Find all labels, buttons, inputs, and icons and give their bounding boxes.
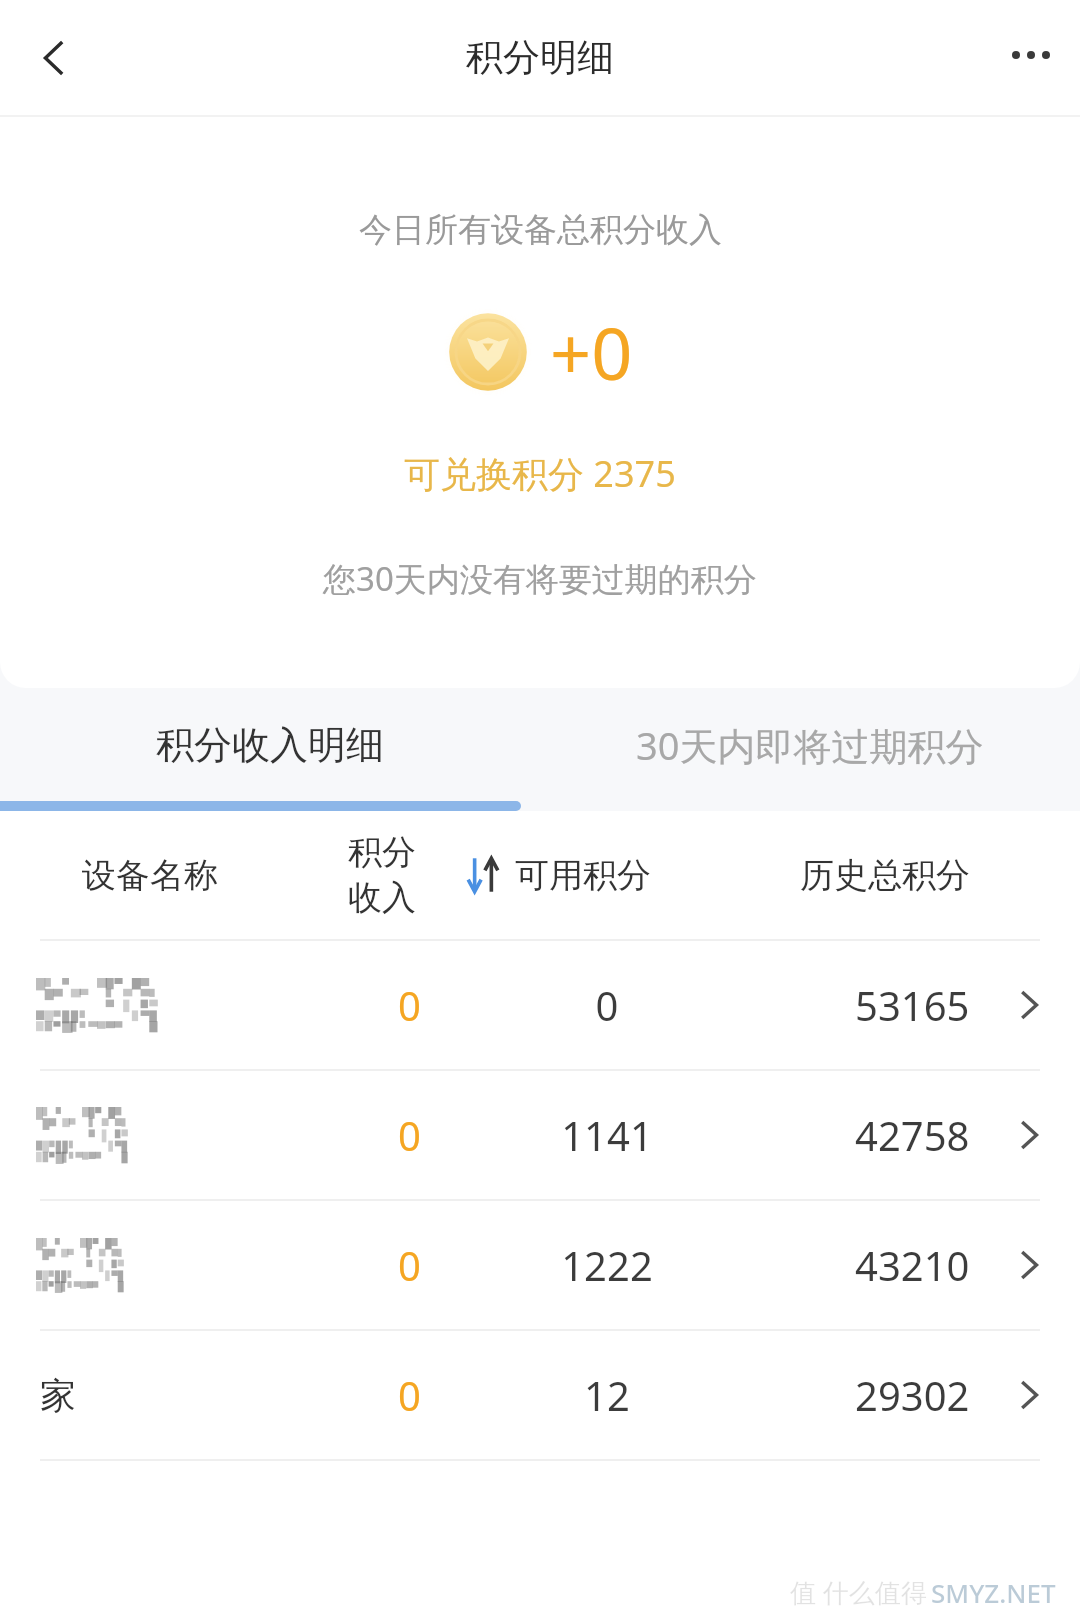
button[interactable]: 积分收入明细 [0, 688, 540, 801]
button[interactable]: 可兑换积分 2375 [404, 449, 676, 498]
button[interactable]: 0 [0, 941, 1080, 1069]
staticText: 29302 [855, 1368, 970, 1422]
staticText: 0 [398, 978, 421, 1032]
staticText: 43210 [855, 1238, 970, 1292]
button[interactable]: 30天内即将过期积分 [540, 688, 1080, 801]
staticText: SMYZ.NET [931, 1575, 1056, 1610]
staticText: 家 [40, 1373, 76, 1418]
button[interactable]: 返回 [20, 23, 90, 93]
staticText: 53165 [855, 978, 970, 1032]
staticText: 可用积分 [515, 854, 651, 897]
staticText: 0 [398, 1238, 421, 1292]
button[interactable]: 家 [0, 1331, 1080, 1459]
staticText: 今日所有设备总积分收入 [359, 209, 722, 251]
staticText: 30天内即将过期积分 [636, 719, 984, 771]
staticText: 您30天内没有将要过期的积分 [323, 556, 757, 601]
staticText: 积分明细 [466, 34, 614, 81]
staticText: 值 什么值得 [790, 1574, 927, 1610]
staticText: 42758 [855, 1108, 970, 1162]
staticText: 0 [507, 978, 707, 1032]
staticText: 1222 [507, 1238, 707, 1292]
button[interactable]: 排序 [457, 849, 509, 901]
staticText: 0 [398, 1108, 421, 1162]
button[interactable]: 更多 [996, 23, 1066, 93]
staticText: 0 [398, 1368, 421, 1422]
staticText: 历史总积分 [800, 854, 970, 897]
staticText: 积分收入 [338, 831, 426, 919]
button[interactable]: 0 [0, 1071, 1080, 1199]
staticText: 积分收入明细 [156, 721, 384, 769]
staticText: 设备名称 [82, 854, 218, 897]
staticText: 12 [507, 1368, 707, 1422]
staticText: +0 [550, 303, 633, 401]
button[interactable]: 0 [0, 1201, 1080, 1329]
staticText: 1141 [507, 1108, 707, 1162]
